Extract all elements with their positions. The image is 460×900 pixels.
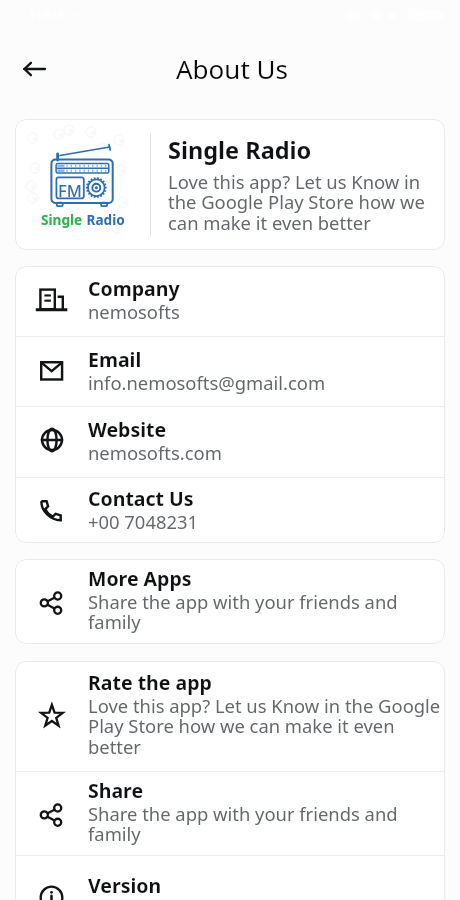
button[interactable]: Share [15,772,445,855]
button[interactable]: Website [15,407,445,477]
staticText: nemosofts [88,299,180,324]
button[interactable]: Email [15,337,445,406]
staticText: Love this app? Let us Know in the Google… [88,693,441,760]
staticText: nemosofts.com [88,440,222,465]
staticText: Website [88,416,167,443]
button[interactable]: Contact Us [15,478,445,543]
staticText: Share the app with your friends and fami… [88,801,441,847]
staticText: info.nemosofts@gmail.com [88,370,326,395]
staticText: Company [88,275,180,302]
staticText: Share the app with your friends and fami… [88,589,441,635]
staticText: Single [41,210,83,229]
staticText: Radio [83,210,125,229]
staticText: Single Radio [168,134,312,166]
staticText: More Apps [88,565,192,592]
staticText: +00 7048231 [88,509,198,534]
staticText: Love this app? Let us Know in the Google… [168,169,437,236]
button[interactable]: Version [15,856,445,900]
staticText: Rate the app [88,669,212,696]
button[interactable]: Company [15,266,445,336]
staticText: Version [88,872,162,899]
staticText: FM [58,179,82,201]
staticText: Share [88,777,144,804]
staticText: About Us [176,51,289,86]
button[interactable]: Back [11,46,57,92]
button[interactable]: More Apps [15,559,445,644]
staticText: Email [88,346,142,373]
staticText: Contact Us [88,485,194,512]
button[interactable]: Rate the app [15,661,445,771]
